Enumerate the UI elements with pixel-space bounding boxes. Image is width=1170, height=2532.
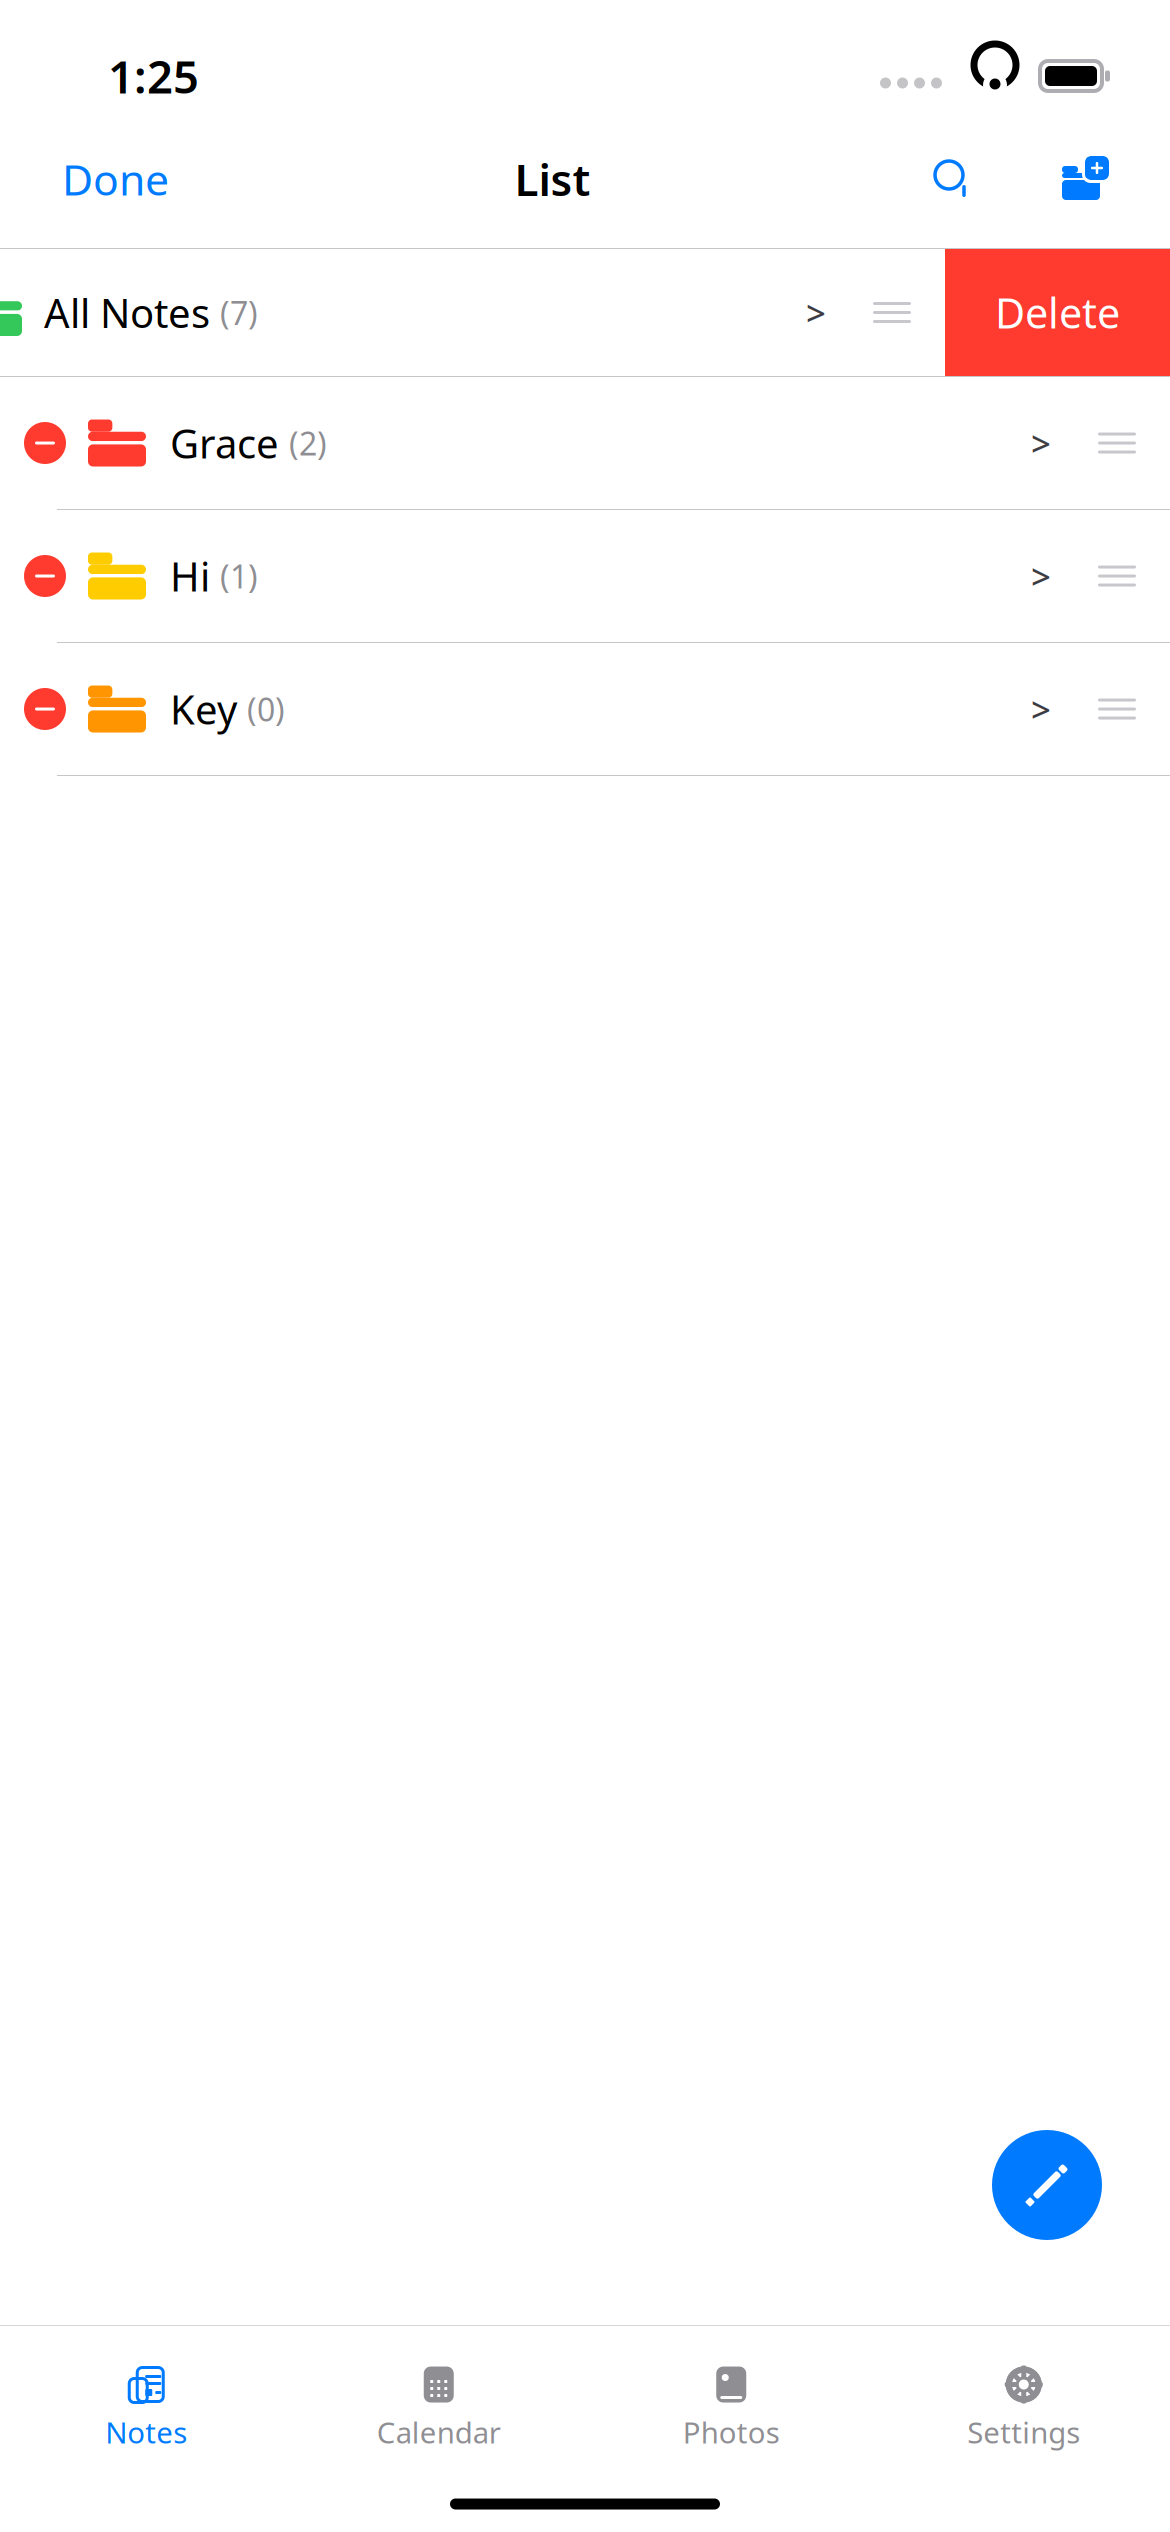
button[interactable]: Notes [0,2350,292,2451]
staticText: > [1031,553,1051,599]
staticText: > [1031,420,1051,466]
staticText: Key [170,682,237,735]
staticText: Delete [995,285,1120,340]
button[interactable]: Key [0,643,1170,776]
staticText: > [806,289,826,335]
staticText: > [1031,686,1051,732]
staticText: Calendar [377,2412,501,2451]
staticText: (7) [220,291,258,334]
button[interactable]: Compose [992,2130,1102,2240]
staticText: Done [62,151,169,207]
button[interactable]: Delete [945,249,1170,376]
staticText: (1) [220,555,258,597]
staticText: Notes [105,2412,187,2451]
staticText: 1:25 [108,46,199,106]
button[interactable]: Settings [877,2350,1170,2451]
button[interactable]: Grace [0,377,1170,510]
staticText: Settings [967,2412,1080,2451]
button[interactable]: New Folder [1054,153,1118,205]
button[interactable]: Photos [585,2350,877,2451]
button[interactable]: All Notes [0,249,1170,377]
button[interactable]: Done [48,141,183,217]
button[interactable]: Hi [0,510,1170,643]
button[interactable]: Calendar [292,2350,585,2451]
staticText: All Notes [44,286,210,339]
button[interactable]: Search [922,152,984,206]
staticText: List [514,150,590,208]
staticText: Grace [170,416,279,469]
staticText: Hi [170,549,210,602]
staticText: (0) [247,688,285,730]
staticText: Photos [683,2412,780,2451]
staticText: (2) [289,422,327,464]
